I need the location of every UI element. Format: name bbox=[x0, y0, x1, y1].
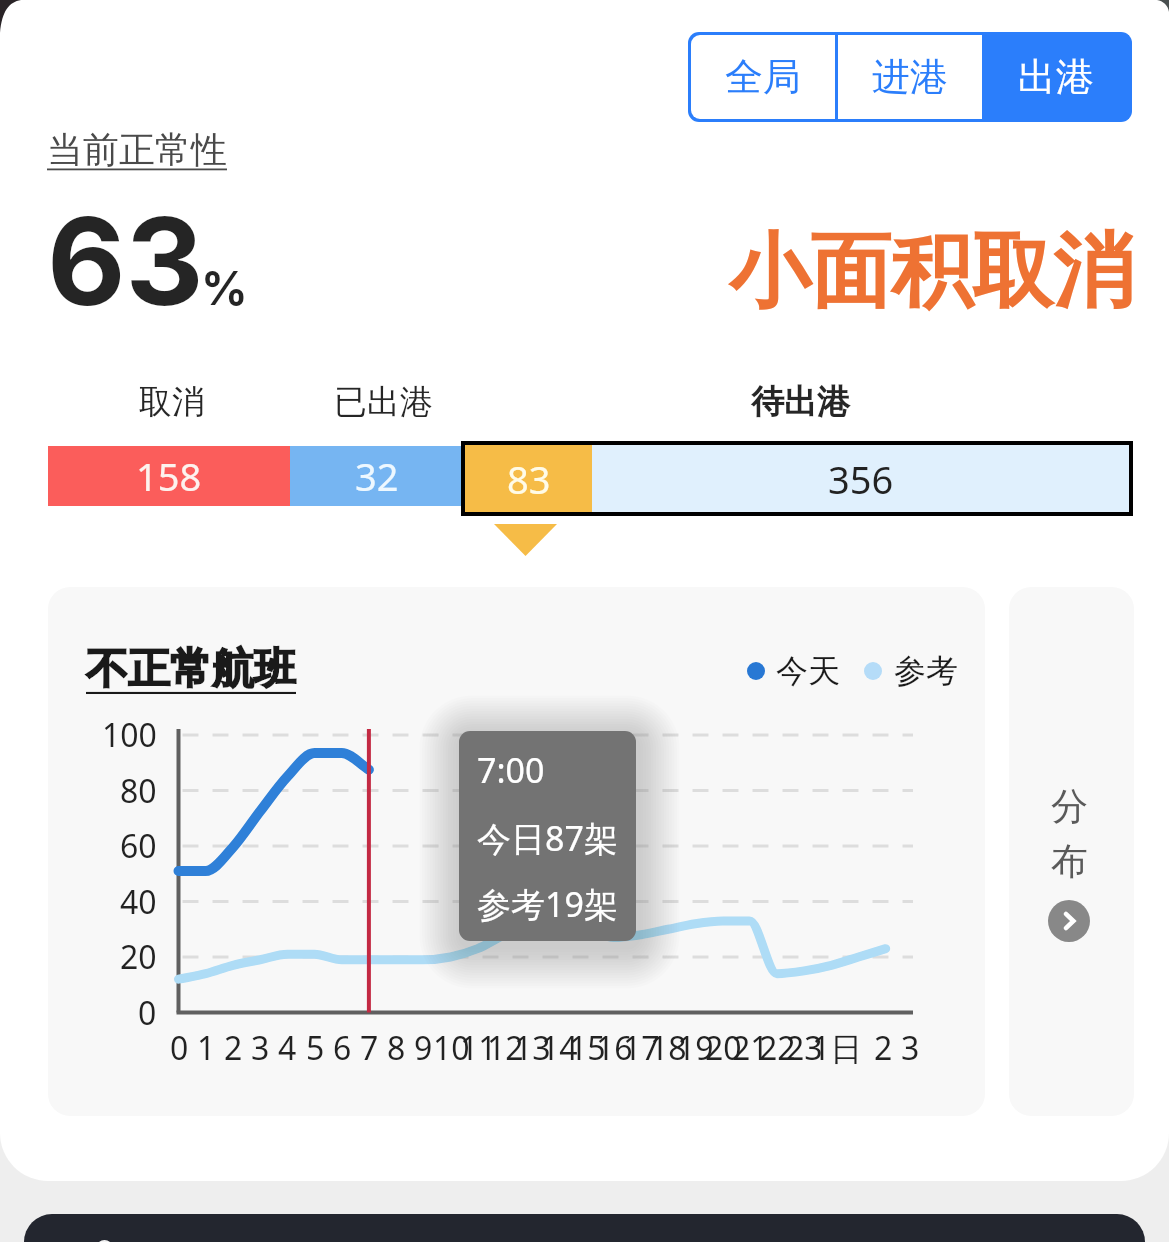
other: More bbox=[1048, 900, 1090, 942]
staticText: 5 bbox=[306, 1026, 325, 1070]
staticText: 取消 bbox=[139, 381, 205, 423]
staticText: 当前正常性 bbox=[47, 127, 227, 172]
staticText: 2 bbox=[874, 1026, 893, 1070]
staticText: 17 bbox=[623, 1026, 660, 1070]
staticText: 60 bbox=[120, 824, 157, 868]
staticText: 12 bbox=[487, 1026, 524, 1070]
staticText: 15 bbox=[569, 1026, 606, 1070]
staticText: 参考 bbox=[894, 651, 958, 691]
staticText: 22 bbox=[759, 1026, 796, 1070]
staticText: 出港 bbox=[1018, 53, 1094, 101]
button[interactable]: 全局 bbox=[691, 35, 835, 119]
staticText: 13 bbox=[514, 1026, 551, 1070]
staticText: 小面积取消 bbox=[729, 221, 1134, 323]
button[interactable]: 出港 bbox=[982, 35, 1129, 119]
staticText: 3 bbox=[901, 1026, 920, 1070]
staticText: 进港 bbox=[872, 53, 948, 101]
staticText: 1日 bbox=[812, 1026, 863, 1070]
staticText: 19 bbox=[677, 1026, 714, 1070]
staticText: 全局 bbox=[725, 53, 801, 101]
staticText: 参考19架 bbox=[477, 881, 618, 927]
staticText: 16 bbox=[596, 1026, 633, 1070]
staticText: 63 bbox=[47, 188, 204, 334]
staticText: 21 bbox=[732, 1026, 769, 1070]
staticText: 不正常航班 bbox=[86, 643, 296, 696]
staticText: 已出港 bbox=[334, 381, 433, 423]
staticText: 83 bbox=[507, 453, 551, 505]
staticText: 20 bbox=[705, 1026, 742, 1070]
staticText: 20 bbox=[120, 935, 157, 979]
staticText: 0 bbox=[170, 1026, 189, 1070]
staticText: 32 bbox=[355, 450, 399, 502]
staticText: 今日87架 bbox=[477, 815, 618, 861]
staticText: 2 bbox=[224, 1026, 243, 1070]
staticText: 7:00 bbox=[477, 747, 545, 793]
staticText: 18 bbox=[650, 1026, 687, 1070]
staticText: 14 bbox=[541, 1026, 578, 1070]
staticText: 100 bbox=[102, 713, 157, 757]
staticText: 0 bbox=[138, 991, 157, 1035]
staticText: 356 bbox=[828, 453, 894, 505]
button[interactable]: 进港 bbox=[838, 35, 982, 119]
staticText: 10 bbox=[433, 1026, 470, 1070]
staticText: 23 bbox=[786, 1026, 823, 1070]
staticText: 分 bbox=[1051, 783, 1088, 830]
staticText: 1 bbox=[197, 1026, 216, 1070]
staticText: 布 bbox=[1051, 838, 1088, 885]
staticText: 4 bbox=[278, 1026, 297, 1070]
staticText: 待出港 bbox=[751, 381, 850, 423]
staticText: 11 bbox=[460, 1026, 497, 1070]
button[interactable]: 分 bbox=[1009, 587, 1134, 1116]
staticText: 6 bbox=[333, 1026, 352, 1070]
staticText: 今天 bbox=[776, 651, 840, 691]
staticText: 9 bbox=[414, 1026, 433, 1070]
staticText: 158 bbox=[136, 450, 202, 502]
staticText: 3 bbox=[251, 1026, 270, 1070]
staticText: % bbox=[201, 260, 248, 316]
staticText: 40 bbox=[120, 880, 157, 924]
staticText: 80 bbox=[120, 769, 157, 813]
staticText: 7 bbox=[360, 1026, 379, 1070]
staticText: 8 bbox=[387, 1026, 406, 1070]
